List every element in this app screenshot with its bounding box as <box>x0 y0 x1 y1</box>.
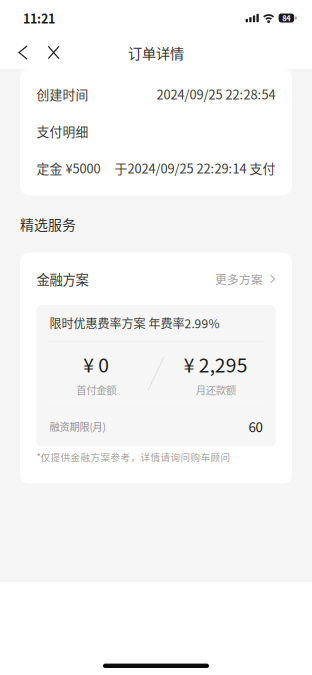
staticText: ¥ 2,295 <box>184 350 248 378</box>
staticText: 精选服务 <box>20 214 76 234</box>
staticText: 金融方案 <box>36 269 88 289</box>
staticText: *仅提供金融方案参考，详情请询问购车顾问 <box>36 450 230 464</box>
staticText: 月还款额 <box>196 382 236 397</box>
staticText: 融资期限(月) <box>49 419 105 434</box>
staticText: 更多方案 <box>215 270 263 287</box>
staticText: 创建时间 <box>36 85 88 103</box>
staticText: 限时优惠费率方案 年费率2.99% <box>49 314 219 332</box>
staticText: 11:21 <box>23 9 55 27</box>
staticText: 60 <box>248 417 262 436</box>
staticText: 定金 ¥5000 <box>36 159 100 177</box>
button[interactable]: 关闭 <box>38 36 69 69</box>
staticText: 于2024/09/25 22:29:14 支付 <box>114 159 275 177</box>
staticText: 订单详情 <box>128 42 184 63</box>
staticText: 2024/09/25 22:28:54 <box>156 85 275 103</box>
button[interactable]: 金融方案 <box>36 253 275 305</box>
staticText: ¥ 0 <box>83 350 109 378</box>
staticText: 支付明细 <box>36 122 88 140</box>
staticText: 84 <box>282 13 290 23</box>
staticText: 首付金额 <box>76 382 116 397</box>
button[interactable]: 返回 <box>9 36 38 69</box>
